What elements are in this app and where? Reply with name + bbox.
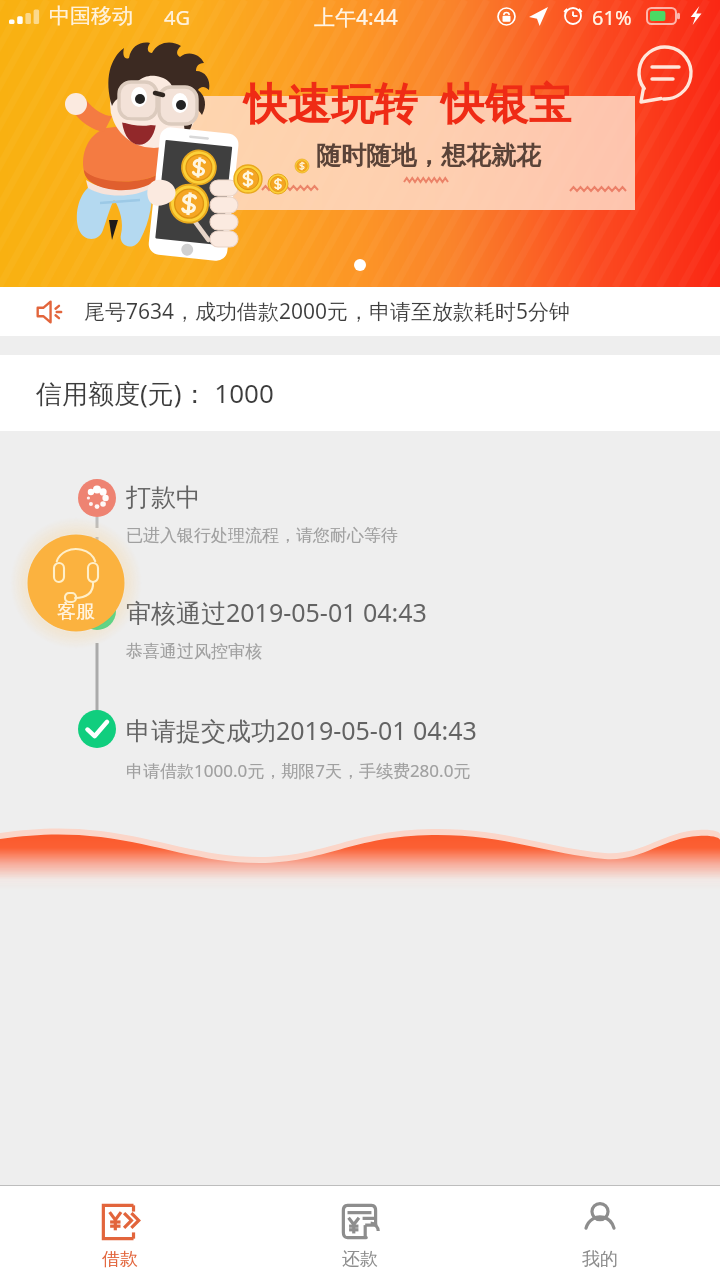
staticText: 借款 xyxy=(102,1248,138,1271)
button[interactable]: 我的 xyxy=(480,1186,720,1280)
staticText: 审核通过2019-05-01 04:43 xyxy=(126,595,427,629)
staticText: 已进入银行处理流程，请您耐心等待 xyxy=(126,525,398,546)
staticText: 申请借款1000.0元，期限7天，手续费280.0元 xyxy=(126,759,471,782)
staticText: 恭喜通过风控审核 xyxy=(126,641,262,662)
staticText: 尾号7634，成功借款2000元，申请至放款耗时5分钟 xyxy=(84,297,571,326)
button[interactable]: 借款 xyxy=(0,1186,240,1280)
button[interactable]: 还款 xyxy=(240,1186,480,1280)
button[interactable]: 客服 xyxy=(10,517,142,649)
staticText: 中国移动 xyxy=(49,3,133,29)
staticText: 上午4:44 xyxy=(314,3,398,32)
staticText: 客服 xyxy=(57,600,95,624)
staticText: 4G xyxy=(164,4,190,31)
staticText: 我的 xyxy=(582,1248,618,1271)
staticText: 申请提交成功2019-05-01 04:43 xyxy=(126,713,477,747)
staticText: 打款中 xyxy=(126,482,201,513)
staticText: 还款 xyxy=(342,1248,378,1271)
staticText: 快速玩转 快银宝 xyxy=(244,73,572,132)
staticText: 随时随地，想花就花 xyxy=(316,140,541,171)
staticText: 61% xyxy=(592,4,632,31)
button[interactable]: Messages xyxy=(633,41,697,105)
staticText: 信用额度(元)： 1000 xyxy=(36,375,274,411)
button[interactable]: 尾号7634，成功借款2000元，申请至放款耗时5分钟 xyxy=(0,287,720,336)
